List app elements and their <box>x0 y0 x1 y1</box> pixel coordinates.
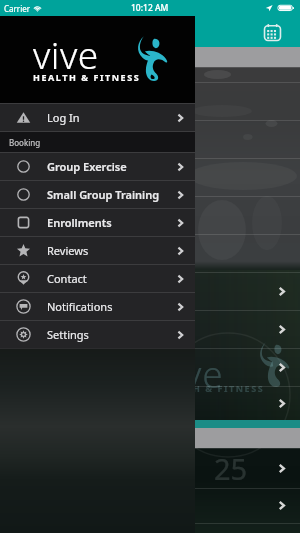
staticText: Booking <box>9 137 41 148</box>
button[interactable]: Reviews <box>0 237 195 264</box>
button[interactable] <box>0 272 300 310</box>
staticText: Reviews <box>47 243 89 258</box>
button[interactable]: Enrollments <box>0 209 195 236</box>
staticText: 10:12 AM <box>131 2 169 14</box>
staticText: Contact <box>47 271 87 286</box>
staticText: Friday, July 14 <box>8 50 75 64</box>
button[interactable] <box>0 523 300 533</box>
button[interactable]: Settings <box>0 321 195 348</box>
button[interactable]: Calendar <box>262 22 283 43</box>
staticText: Notifications <box>47 299 113 314</box>
staticText: Carrier <box>4 3 31 14</box>
button[interactable] <box>0 448 300 488</box>
staticText: HEALTH & FITNESS <box>157 382 265 394</box>
staticText: Enrollments <box>47 215 112 230</box>
button[interactable] <box>0 234 300 272</box>
staticText: vive <box>156 348 224 398</box>
button[interactable]: Log In <box>0 104 195 131</box>
staticText: Settings <box>47 327 89 342</box>
staticText: vive <box>33 29 99 79</box>
button[interactable] <box>0 386 300 420</box>
button[interactable]: Contact <box>0 265 195 292</box>
button[interactable] <box>0 120 300 158</box>
button[interactable] <box>0 348 300 386</box>
staticText: 25 <box>214 449 248 488</box>
button[interactable] <box>0 488 300 523</box>
button[interactable] <box>0 67 300 82</box>
staticText: Log In <box>47 110 80 125</box>
staticText: Group Exercise <box>47 159 127 174</box>
button[interactable] <box>0 310 300 348</box>
button[interactable] <box>0 158 300 196</box>
staticText: HEALTH & FITNESS <box>33 71 141 83</box>
button[interactable]: Notifications <box>0 293 195 320</box>
button[interactable]: Small Group Training <box>0 181 195 208</box>
staticText: Small Group Training <box>47 187 160 202</box>
button[interactable] <box>0 196 300 234</box>
button[interactable] <box>0 82 300 120</box>
button[interactable]: Group Exercise <box>0 153 195 180</box>
